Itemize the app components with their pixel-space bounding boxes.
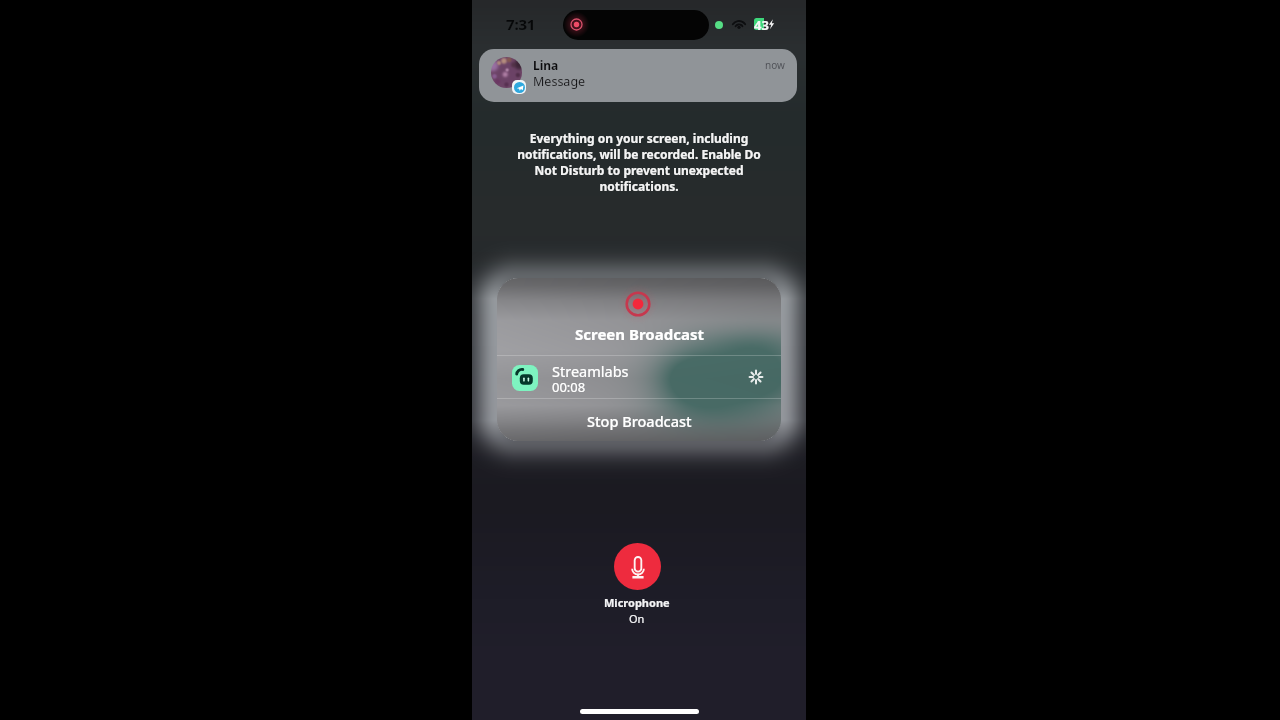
other: Loading (749, 370, 763, 384)
button[interactable]: Streamlabs (497, 356, 781, 398)
staticText: Lina (533, 57, 559, 73)
button[interactable]: Microphone On (614, 543, 661, 590)
staticText: Everything on your screen, including not… (489, 130, 789, 194)
button[interactable]: Stop Broadcast (497, 399, 781, 441)
button[interactable]: Lina (479, 49, 797, 102)
staticText: 7:31 (506, 14, 536, 34)
staticText: Stop Broadcast (587, 411, 692, 431)
staticText: now (765, 58, 785, 72)
staticText: On (629, 611, 645, 626)
staticText: 43 (754, 16, 769, 34)
staticText: Streamlabs (552, 361, 629, 381)
staticText: Message (533, 73, 586, 90)
staticText: 00:08 (552, 378, 586, 396)
staticText: Microphone (604, 595, 670, 610)
staticText: Screen Broadcast (575, 324, 704, 344)
